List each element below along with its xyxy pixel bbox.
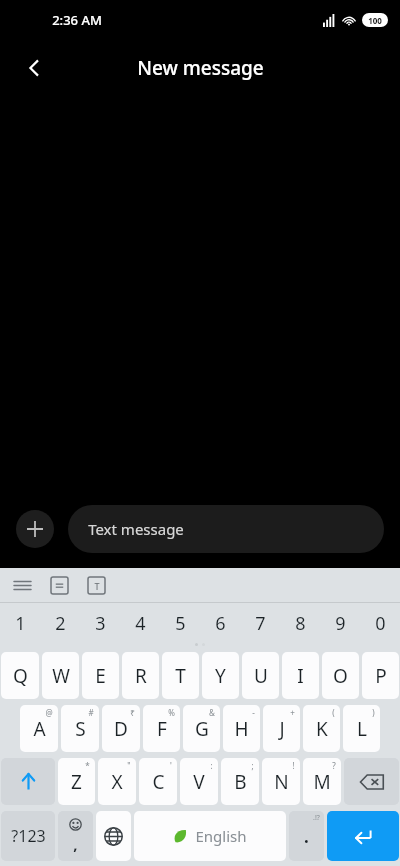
staticText: . — [304, 825, 309, 848]
button[interactable]: X — [98, 758, 136, 805]
staticText: R — [135, 663, 147, 689]
staticText: 5 — [175, 611, 186, 636]
staticText: N — [274, 769, 289, 795]
button[interactable]: R — [122, 652, 159, 699]
staticText: English — [195, 826, 247, 846]
button[interactable]: 7 — [240, 603, 280, 649]
button[interactable]: Clipboard — [51, 577, 68, 594]
button[interactable]: G — [183, 705, 220, 752]
staticText: I — [297, 663, 304, 689]
button[interactable]: W — [42, 652, 79, 699]
button[interactable]: 5 — [160, 603, 200, 649]
staticText: * — [85, 760, 90, 771]
button[interactable]: Y — [202, 652, 239, 699]
button[interactable]: K — [303, 705, 340, 752]
button[interactable]: Text message — [68, 505, 384, 553]
staticText: # — [88, 707, 94, 718]
button[interactable]: F — [143, 705, 180, 752]
staticText: 0 — [375, 611, 386, 636]
button[interactable]: 2 — [40, 603, 80, 649]
button[interactable]: ?123 — [1, 811, 55, 861]
staticText: E — [95, 663, 106, 689]
button[interactable]: H — [223, 705, 260, 752]
staticText: M — [313, 769, 331, 795]
button[interactable]: Text editing — [88, 577, 105, 594]
button[interactable]: 0 — [360, 603, 400, 649]
staticText: & — [209, 707, 215, 718]
button[interactable]: 4 — [120, 603, 160, 649]
button[interactable]: 8 — [280, 603, 320, 649]
staticText: C — [152, 769, 165, 795]
staticText: O — [333, 663, 348, 689]
staticText: P — [375, 663, 387, 689]
button[interactable]: Change language — [96, 811, 131, 861]
staticText: W — [52, 663, 70, 689]
staticText: U — [254, 663, 268, 689]
button[interactable]: Add attachment — [16, 510, 54, 548]
button[interactable]: . — [289, 811, 324, 861]
button[interactable]: M — [303, 758, 341, 805]
button[interactable]: A — [20, 705, 58, 752]
staticText: 1 — [15, 611, 26, 636]
button[interactable]: I — [282, 652, 319, 699]
staticText: @ — [45, 707, 53, 718]
button[interactable]: Emoji and comma — [58, 811, 93, 861]
button[interactable]: P — [362, 652, 399, 699]
button[interactable]: O — [322, 652, 359, 699]
button[interactable]: 1 — [0, 603, 40, 649]
staticText: 2 — [55, 611, 66, 636]
staticText: ? — [332, 760, 336, 771]
staticText: Q — [13, 663, 28, 689]
button[interactable]: 3 — [80, 603, 120, 649]
button[interactable]: 6 — [200, 603, 240, 649]
button[interactable]: English — [134, 811, 286, 861]
staticText: S — [75, 716, 86, 742]
button[interactable]: N — [262, 758, 300, 805]
staticText: ) — [372, 707, 375, 718]
staticText: : — [210, 760, 213, 771]
staticText: G — [195, 716, 209, 742]
button[interactable]: C — [139, 758, 177, 805]
button[interactable]: Backspace — [344, 758, 399, 805]
staticText: Text message — [88, 519, 184, 539]
staticText: , — [73, 834, 78, 854]
staticText: 7 — [255, 611, 266, 636]
button[interactable]: E — [82, 652, 119, 699]
staticText: .!? — [313, 813, 320, 823]
button[interactable]: Enter — [327, 811, 399, 861]
button[interactable]: Z — [58, 758, 95, 805]
staticText: X — [111, 769, 123, 795]
staticText: 8 — [295, 611, 306, 636]
staticText: ! — [292, 760, 295, 771]
button[interactable]: Menu — [14, 577, 31, 594]
staticText: 9 — [335, 611, 346, 636]
staticText: D — [114, 716, 128, 742]
button[interactable]: T — [162, 652, 199, 699]
staticText: 100 — [368, 15, 382, 26]
staticText: 4 — [135, 611, 146, 636]
button[interactable]: 9 — [320, 603, 360, 649]
staticText: L — [357, 716, 367, 742]
button[interactable]: Shift — [1, 758, 55, 805]
staticText: B — [234, 769, 247, 795]
staticText: + — [290, 707, 295, 718]
button[interactable]: J — [263, 705, 300, 752]
button[interactable]: B — [221, 758, 259, 805]
button[interactable]: D — [102, 705, 140, 752]
button[interactable]: L — [343, 705, 380, 752]
button[interactable]: S — [61, 705, 99, 752]
button[interactable]: V — [180, 758, 218, 805]
staticText: 6 — [215, 611, 226, 636]
staticText: K — [316, 716, 328, 742]
staticText: J — [279, 716, 285, 742]
staticText: - — [252, 707, 255, 718]
staticText: % — [168, 707, 175, 718]
staticText: Y — [215, 663, 226, 689]
staticText: H — [234, 716, 249, 742]
staticText: ' — [170, 760, 172, 771]
button[interactable]: U — [242, 652, 279, 699]
staticText: V — [193, 769, 205, 795]
button[interactable]: Q — [1, 652, 39, 699]
staticText: ?123 — [11, 825, 46, 847]
button[interactable]: Back — [14, 48, 54, 88]
